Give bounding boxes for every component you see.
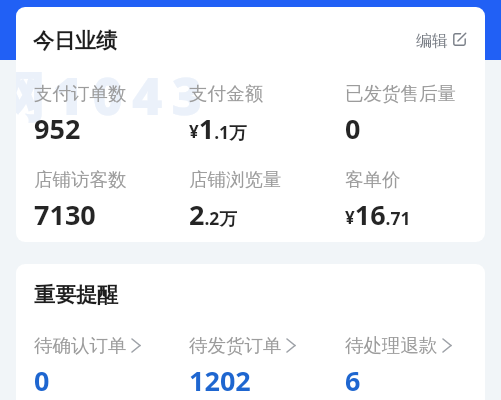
staticText: ¥1.1万	[189, 110, 247, 147]
button[interactable]: 待处理退款	[345, 334, 452, 399]
staticText: 客单价	[345, 168, 401, 191]
staticText: 1202	[189, 362, 251, 399]
staticText: 待发货订单	[189, 334, 282, 357]
button[interactable]: 编辑	[416, 31, 466, 51]
staticText: 7130	[34, 196, 96, 233]
staticText: 支付订单数	[34, 82, 127, 105]
staticText: 重要提醒	[34, 282, 118, 308]
staticText: 待确认订单	[34, 334, 127, 357]
staticText: 952	[34, 110, 81, 147]
button[interactable]: 待发货订单	[189, 334, 296, 399]
staticText: 6	[345, 362, 361, 399]
staticText: 今日业绩	[33, 28, 117, 54]
staticText: 2.2万	[189, 196, 237, 233]
staticText: 店铺浏览量	[189, 168, 282, 191]
other: Edit	[453, 33, 466, 46]
staticText: 店铺访客数	[34, 168, 127, 191]
button[interactable]: 待确认订单	[34, 334, 141, 399]
staticText: 0	[34, 362, 50, 399]
staticText: ¥16.71	[345, 196, 411, 233]
staticText: 网1043	[16, 59, 211, 130]
staticText: 支付金额	[189, 82, 263, 105]
staticText: 编辑	[416, 31, 448, 51]
staticText: 已发货售后量	[345, 82, 456, 105]
staticText: 待处理退款	[345, 334, 438, 357]
staticText: 0	[345, 110, 361, 147]
